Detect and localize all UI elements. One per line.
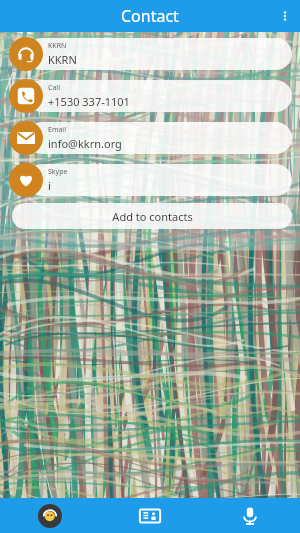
button[interactable]: Email — [9, 121, 43, 155]
button[interactable]: Call — [9, 79, 43, 113]
staticText: Contact — [121, 5, 179, 27]
button[interactable]: Email — [0, 120, 292, 156]
staticText: Add to contacts — [112, 209, 193, 224]
staticText: Email — [48, 125, 66, 135]
button[interactable]: More options — [270, 0, 300, 32]
staticText: info@kkrn.org — [48, 136, 122, 151]
staticText: Skype — [48, 167, 68, 177]
staticText: KKRN — [48, 41, 67, 51]
button[interactable]: Add to contacts — [12, 203, 292, 229]
button[interactable]: Skype — [0, 162, 292, 198]
button[interactable]: KKRN — [9, 37, 43, 71]
staticText: KKRN — [48, 52, 77, 67]
button[interactable]: Contact card — [100, 498, 200, 533]
staticText: i — [48, 178, 51, 193]
button[interactable]: KKRN — [0, 36, 292, 72]
button[interactable]: Call — [0, 78, 292, 114]
button[interactable]: Skype — [9, 163, 43, 197]
button[interactable]: Profile — [0, 498, 100, 533]
staticText: +1530 337-1101 — [48, 94, 130, 109]
staticText: Call — [48, 83, 60, 93]
button[interactable]: Voice search — [200, 498, 300, 533]
